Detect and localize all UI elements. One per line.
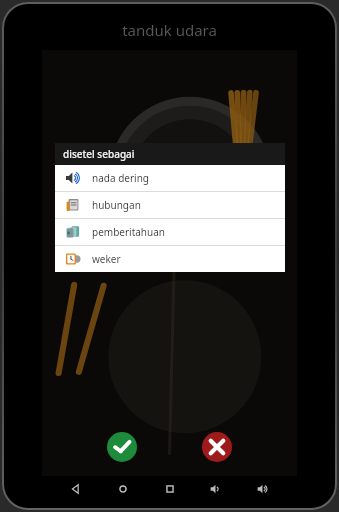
staticText: hubungan: [92, 198, 141, 212]
button[interactable]: weker: [55, 246, 285, 272]
button[interactable]: hubungan: [55, 192, 285, 218]
button[interactable]: pemberitahuan: [55, 219, 285, 245]
button[interactable]: Volume down: [203, 476, 229, 502]
staticText: nada dering: [92, 171, 149, 185]
button[interactable]: Confirm: [107, 432, 137, 462]
button[interactable]: Back: [63, 476, 89, 502]
staticText: pemberitahuan: [92, 225, 166, 239]
button[interactable]: Home: [110, 476, 136, 502]
staticText: tanduk udara: [122, 20, 217, 40]
button[interactable]: Cancel: [202, 432, 232, 462]
button[interactable]: Volume up: [250, 476, 276, 502]
button[interactable]: Recents: [157, 476, 183, 502]
button[interactable]: nada dering: [55, 165, 285, 191]
staticText: disetel sebagai: [63, 147, 135, 161]
staticText: weker: [92, 252, 121, 266]
